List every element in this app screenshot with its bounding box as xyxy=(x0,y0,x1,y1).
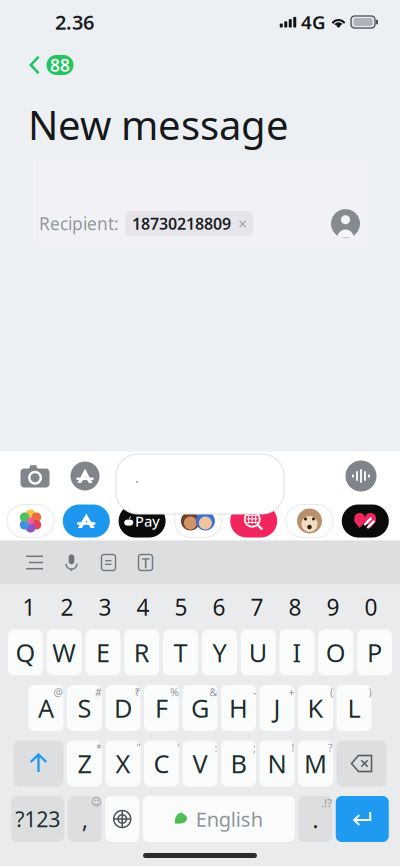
staticText: New message xyxy=(28,98,289,151)
button[interactable]: Camera xyxy=(20,464,49,487)
staticText: 7 xyxy=(250,592,263,622)
staticText: 3 xyxy=(98,592,111,622)
staticText: " xyxy=(136,740,140,755)
button[interactable]: T xyxy=(163,629,198,675)
staticText: ) xyxy=(368,685,371,699)
button[interactable]: Images xyxy=(230,504,277,537)
button[interactable]: " xyxy=(105,740,140,786)
staticText: % xyxy=(170,685,179,699)
staticText: Recipient: xyxy=(39,212,119,235)
staticText: P xyxy=(367,636,382,669)
button[interactable]: ₹ xyxy=(105,685,140,731)
button[interactable]: 0 xyxy=(352,588,390,626)
staticText: A xyxy=(38,691,54,725)
button[interactable]: Photos xyxy=(7,504,54,537)
button[interactable]: * xyxy=(67,740,102,786)
button[interactable]: 8 xyxy=(276,588,314,626)
button[interactable]: Digital Touch xyxy=(342,504,389,537)
button[interactable]: Return xyxy=(336,796,389,842)
staticText: ! xyxy=(291,740,294,755)
staticText: ☺ xyxy=(91,796,102,808)
button[interactable]: R xyxy=(124,629,159,675)
button[interactable]: 5 xyxy=(162,588,200,626)
button[interactable]: O xyxy=(318,629,353,675)
staticText: , xyxy=(82,803,88,835)
staticText: X xyxy=(115,747,130,780)
button[interactable]: Menu xyxy=(16,540,53,584)
button[interactable]: 1 xyxy=(10,588,48,626)
button[interactable]: Memoji xyxy=(174,504,221,537)
button[interactable]: # xyxy=(67,685,102,731)
button[interactable]: ! xyxy=(259,740,294,786)
staticText: B xyxy=(230,747,246,780)
button[interactable]: 3 xyxy=(86,588,124,626)
button[interactable]: Clipboard xyxy=(90,540,127,584)
button[interactable]: + xyxy=(259,685,294,731)
staticText: Z xyxy=(77,747,91,780)
button[interactable]: Message text field xyxy=(116,454,284,514)
button[interactable]: ) xyxy=(336,685,371,731)
button[interactable]: Backspace xyxy=(336,740,386,786)
button[interactable]: Text editing xyxy=(127,540,164,584)
button[interactable]: E xyxy=(85,629,120,675)
staticText: - xyxy=(253,685,256,699)
button[interactable]: P xyxy=(357,629,392,675)
button[interactable]: App Store xyxy=(70,461,99,490)
button[interactable]: ?123 xyxy=(11,796,64,842)
staticText: 4G xyxy=(301,10,326,34)
staticText: × xyxy=(238,213,247,234)
button[interactable]: @ xyxy=(28,685,63,731)
button[interactable]: .!? xyxy=(298,796,332,842)
button[interactable]: ☺ xyxy=(68,796,102,842)
button[interactable]: : xyxy=(182,740,217,786)
staticText: @ xyxy=(53,685,63,699)
button[interactable]: 6 xyxy=(200,588,238,626)
staticText: L xyxy=(347,691,360,725)
staticText: 0 xyxy=(364,592,377,622)
button[interactable]: Space, English xyxy=(143,796,295,842)
button[interactable]: Record audio xyxy=(345,460,376,491)
button[interactable]: Voice input xyxy=(53,540,90,584)
button[interactable]: Animoji xyxy=(286,504,333,537)
staticText: V xyxy=(192,747,207,780)
staticText: ; xyxy=(253,740,256,755)
staticText: 6 xyxy=(212,592,225,622)
staticText: O xyxy=(326,636,346,669)
button[interactable]: U xyxy=(241,629,276,675)
button[interactable]: Change keyboard xyxy=(105,796,139,842)
staticText: Pay xyxy=(135,511,160,531)
button[interactable]: ; xyxy=(221,740,256,786)
button[interactable]: Add contact xyxy=(331,209,360,238)
button[interactable]: - xyxy=(221,685,256,731)
button[interactable]: & xyxy=(182,685,217,731)
staticText: ' xyxy=(177,740,179,755)
button[interactable]: Y xyxy=(202,629,237,675)
staticText: D xyxy=(114,691,132,725)
button[interactable]: Q xyxy=(8,629,43,675)
staticText: 2 xyxy=(60,592,73,622)
button[interactable]: I xyxy=(279,629,314,675)
staticText: * xyxy=(96,740,102,755)
button[interactable]: 4 xyxy=(124,588,162,626)
button[interactable]: Shift xyxy=(13,740,63,786)
button[interactable]: % xyxy=(144,685,179,731)
staticText: 88 xyxy=(50,53,70,76)
button[interactable]: ? xyxy=(298,740,333,786)
button[interactable]: 18730218809 xyxy=(125,211,253,236)
button[interactable]: 7 xyxy=(238,588,276,626)
button[interactable]: 9 xyxy=(314,588,352,626)
staticText: I xyxy=(292,636,301,669)
button[interactable]: ( xyxy=(298,685,333,731)
staticText: . xyxy=(312,803,318,835)
button[interactable]: W xyxy=(47,629,82,675)
button[interactable]: App Store xyxy=(63,504,110,537)
staticText: 5 xyxy=(174,592,187,622)
button[interactable]: 2 xyxy=(48,588,86,626)
staticText: ( xyxy=(330,685,333,699)
button[interactable]: ' xyxy=(144,740,179,786)
staticText: + xyxy=(288,685,294,699)
staticText: T xyxy=(174,636,188,669)
button[interactable]: Apple Pay xyxy=(119,504,166,537)
staticText: & xyxy=(209,685,217,699)
button[interactable]: Back, 88 conversations xyxy=(29,55,73,75)
